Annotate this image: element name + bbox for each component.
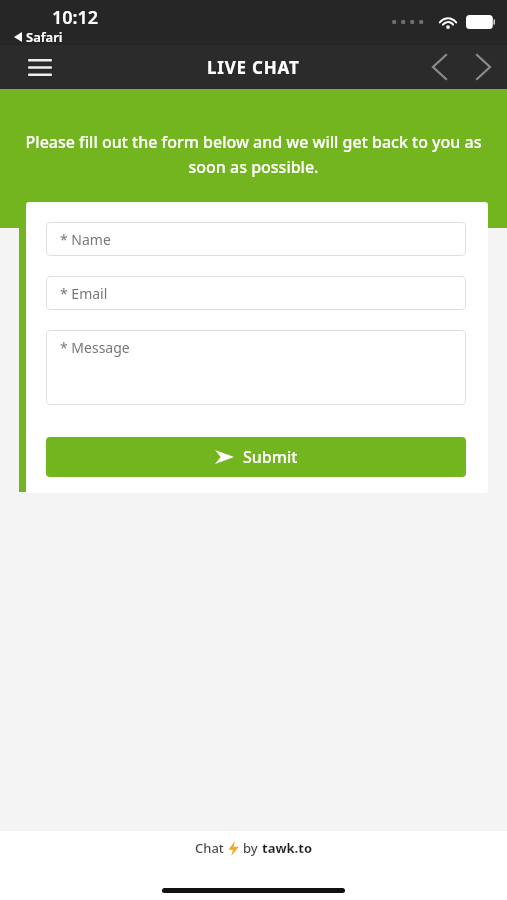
button[interactable]: * Name (46, 222, 466, 256)
staticText: * Name (60, 230, 111, 249)
button[interactable]: Forward (461, 45, 505, 89)
button[interactable]: * Message (46, 330, 466, 405)
staticText: Safari (26, 28, 63, 46)
staticText: tawk.to (262, 839, 313, 857)
staticText: LIVE CHAT (207, 56, 300, 79)
staticText: Chat (195, 839, 228, 857)
staticText: Please fill out the form below and we wi… (20, 131, 487, 177)
staticText: Submit (243, 446, 298, 468)
button[interactable]: Submit (46, 437, 466, 477)
staticText: * Message (60, 338, 130, 357)
staticText: by (243, 839, 262, 857)
staticText: * Email (60, 284, 108, 303)
button[interactable]: Safari (14, 28, 63, 46)
button[interactable]: * Email (46, 276, 466, 310)
button[interactable]: Back (417, 45, 461, 89)
staticText: 10:12 (52, 5, 99, 30)
button[interactable]: Chat (195, 839, 313, 857)
button[interactable]: Menu (20, 47, 60, 87)
